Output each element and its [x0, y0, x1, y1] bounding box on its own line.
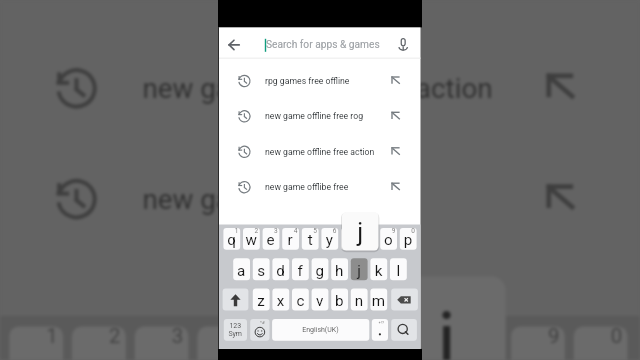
button[interactable] — [218, 134, 422, 169]
button[interactable]: Back — [224, 35, 244, 55]
button[interactable] — [218, 98, 422, 133]
button[interactable] — [218, 63, 422, 98]
button[interactable] — [251, 31, 393, 59]
button[interactable]: Voice search — [393, 35, 413, 55]
button[interactable] — [218, 169, 422, 204]
